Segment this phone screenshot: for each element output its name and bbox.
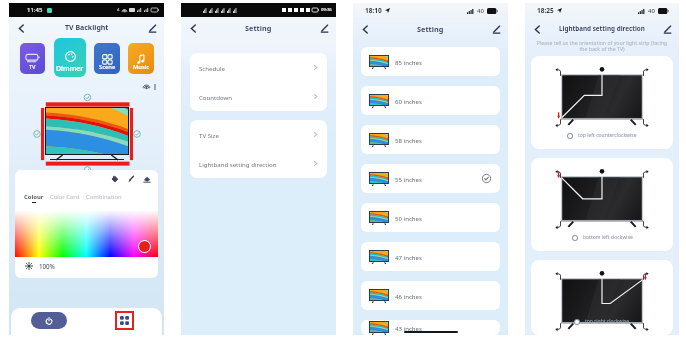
button[interactable]: Selected colour — [139, 241, 150, 252]
button[interactable]: Music — [128, 43, 154, 74]
button[interactable]: 58 inches — [361, 125, 500, 154]
staticText: 40 — [477, 7, 484, 15]
button[interactable]: TV — [20, 43, 45, 74]
button[interactable]: 85 inches — [361, 47, 500, 76]
button[interactable]: TV Size — [190, 120, 327, 149]
button[interactable]: 50 inches — [361, 203, 500, 232]
staticText: Scene — [99, 63, 116, 71]
staticText: top right clockwise — [585, 318, 630, 325]
button[interactable]: 47 inches — [361, 242, 500, 271]
staticText: Setting — [245, 23, 272, 33]
staticText: 50 inches — [395, 214, 422, 222]
button[interactable]: Back — [13, 20, 29, 36]
staticText: 18:10 — [365, 6, 382, 15]
button[interactable]: Edit — [659, 21, 675, 37]
staticText: TV — [29, 63, 36, 70]
staticText: Colour — [24, 193, 44, 201]
button[interactable]: top right clockwise — [531, 260, 673, 335]
button[interactable]: Back — [185, 20, 201, 36]
staticText: 4 — [117, 7, 120, 13]
staticText: Please tell us the orientation of your l… — [533, 39, 671, 53]
staticText: Schedule — [199, 64, 225, 72]
staticText: 09:36 — [321, 7, 332, 13]
staticText: Lightband setting direction — [559, 24, 645, 33]
staticText: Lightband setting direction — [199, 160, 277, 168]
button[interactable]: Color Card — [50, 193, 80, 201]
staticText: bottom left clockwise — [583, 234, 633, 241]
button[interactable]: 60 inches — [361, 86, 500, 115]
button[interactable]: Lightband setting direction — [190, 149, 327, 178]
button[interactable]: Scene — [94, 43, 120, 74]
staticText: Music — [133, 63, 150, 71]
staticText: Dimmer — [56, 64, 84, 74]
staticText: 60 inches — [395, 97, 422, 105]
button[interactable]: Power — [31, 312, 67, 329]
staticText: 100% — [39, 262, 55, 270]
button[interactable]: Back — [357, 21, 373, 37]
button[interactable]: Dimmer — [54, 38, 86, 77]
button[interactable]: Edit — [488, 21, 504, 37]
button[interactable]: Colour — [24, 193, 44, 203]
button[interactable]: Schedule — [190, 53, 327, 82]
staticText: Setting — [417, 24, 444, 34]
staticText: top left counterclockwise — [578, 132, 637, 139]
staticText: 11:45 — [27, 6, 43, 14]
button[interactable]: Fill — [111, 175, 119, 183]
staticText: TV Size — [199, 131, 219, 139]
button[interactable]: 46 inches — [361, 281, 500, 310]
button[interactable]: top left counterclockwise — [531, 56, 673, 149]
button[interactable]: 43 inches — [361, 320, 500, 335]
button[interactable]: Edit — [144, 20, 160, 36]
button[interactable]: Back — [529, 21, 545, 37]
button[interactable]: Countdown — [190, 82, 327, 111]
staticText: 18:25 — [537, 6, 554, 15]
button[interactable]: Combination — [86, 193, 122, 201]
button[interactable]: Edit — [316, 20, 332, 36]
staticText: TV Backlight — [65, 23, 109, 33]
button[interactable]: Eraser — [143, 175, 151, 183]
button[interactable]: 55 inches — [361, 164, 500, 193]
staticText: 55 inches — [395, 175, 422, 183]
staticText: Countdown — [199, 93, 233, 101]
staticText: 43 inches — [395, 324, 422, 332]
staticText: 40 — [648, 7, 655, 15]
staticText: 47 inches — [395, 253, 422, 261]
staticText: 46 inches — [395, 292, 422, 300]
button[interactable]: Brush — [127, 175, 135, 183]
button[interactable]: Modes — [117, 313, 132, 328]
staticText: 58 inches — [395, 136, 422, 144]
button[interactable]: bottom left clockwise — [531, 158, 673, 251]
staticText: 85 inches — [395, 58, 422, 66]
